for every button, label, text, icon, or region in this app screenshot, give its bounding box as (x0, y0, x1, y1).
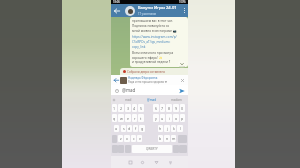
button[interactable]: Back (111, 4, 122, 17)
staticText: u (161, 116, 164, 121)
staticText: f (135, 126, 137, 131)
staticText: @mad (147, 98, 157, 102)
button[interactable]: @mad (140, 95, 164, 104)
button[interactable]: d (127, 125, 132, 132)
staticText: y (155, 116, 157, 121)
staticText: i (169, 116, 170, 121)
staticText: k (173, 126, 175, 131)
button[interactable]: Recent apps (126, 158, 134, 166)
button[interactable]: More options (181, 4, 188, 17)
button[interactable]: p (180, 114, 185, 122)
button[interactable]: z (118, 135, 123, 142)
staticText: мной можно в инстаграме 📷 (132, 29, 177, 33)
button[interactable]: 9 (173, 104, 179, 112)
button[interactable]: r (132, 114, 137, 122)
button[interactable]: 7 (160, 104, 165, 112)
staticText: приглашаем вас в этот чат. (132, 19, 173, 23)
button[interactable]: s (121, 125, 126, 132)
staticText: o (175, 116, 178, 121)
staticText: @mad (122, 87, 136, 93)
staticText: 9 (175, 106, 178, 111)
staticText: d (128, 126, 131, 131)
button[interactable]: Back (152, 158, 160, 166)
button[interactable]: g (139, 125, 145, 132)
staticText: e (127, 116, 130, 121)
button[interactable]: Scroll to bottom (178, 60, 186, 68)
button[interactable]: 1 (112, 104, 117, 112)
button[interactable]: 3 (125, 104, 131, 112)
staticText: t (140, 116, 142, 121)
button[interactable]: madam (164, 95, 188, 104)
button[interactable]: k (171, 125, 176, 132)
button[interactable]: 0 (180, 104, 185, 112)
staticText: 6 (155, 106, 158, 111)
staticText: 2 (120, 106, 123, 111)
button[interactable]: Cancel reply (179, 77, 186, 84)
staticText: 4 (133, 106, 136, 111)
staticText: x (126, 136, 128, 141)
button[interactable]: i (166, 114, 172, 122)
button[interactable]: 6 (153, 104, 159, 112)
button[interactable]: b (158, 135, 163, 142)
staticText: Бакуни Игры 24.01 (138, 5, 177, 11)
button[interactable]: Send (177, 86, 186, 95)
button[interactable]: x (124, 135, 130, 142)
button[interactable]: o (173, 114, 179, 122)
button[interactable]: Home (138, 158, 146, 166)
staticText: https://www.instagram.com/p/ (132, 35, 177, 39)
staticText: q (113, 116, 116, 121)
staticText: g (141, 126, 144, 131)
button[interactable]: f (133, 125, 138, 132)
staticText: n (166, 136, 169, 141)
button[interactable]: e (125, 114, 131, 122)
staticText: Всем отличного просмотра (132, 51, 174, 55)
button[interactable]: q (112, 114, 117, 122)
button[interactable]: Keyboard settings (111, 95, 116, 104)
staticText: 0 (181, 106, 184, 111)
staticText: Подписка пожалуйста со (132, 24, 170, 28)
staticText: 7 (161, 106, 164, 111)
staticText: 100% (179, 0, 186, 4)
staticText: Собрали двери оставлено (127, 70, 166, 74)
staticText: 1 (113, 106, 116, 111)
staticText: mad (125, 98, 132, 102)
staticText: QWERTY (146, 147, 158, 151)
staticText: w (120, 116, 123, 121)
staticText: m (172, 136, 176, 141)
button[interactable]: Hide keyboard (166, 158, 174, 166)
button[interactable]: h (158, 125, 163, 132)
button[interactable]: v (137, 135, 142, 142)
staticText: r (134, 116, 136, 121)
button[interactable]: c (131, 135, 136, 142)
staticText: b (159, 136, 162, 141)
button[interactable]: u (160, 114, 165, 122)
button[interactable]: t (138, 114, 144, 122)
button[interactable]: w (118, 114, 124, 122)
button[interactable]: QWERTY (132, 145, 172, 153)
button[interactable]: a (114, 125, 119, 132)
button[interactable]: mad (116, 95, 140, 104)
button[interactable]: 5 (138, 104, 144, 112)
staticText: C5dSPDs_aT/igs_medium= (132, 40, 171, 44)
button[interactable]: l (177, 125, 183, 132)
staticText: madam (171, 98, 182, 102)
button[interactable]: 8 (166, 104, 172, 112)
button[interactable]: n (164, 135, 170, 142)
staticText: p (181, 116, 184, 121)
staticText: a (115, 126, 118, 131)
button[interactable]: Reply (113, 77, 120, 84)
staticText: Рада и это прошло здорово ❤ (128, 80, 168, 84)
button[interactable]: y (153, 114, 159, 122)
button[interactable]: Emoji (113, 87, 120, 94)
button[interactable]: j (164, 125, 170, 132)
button[interactable]: 2 (118, 104, 124, 112)
button[interactable]: 4 (132, 104, 137, 112)
button[interactable]: m (171, 135, 176, 142)
